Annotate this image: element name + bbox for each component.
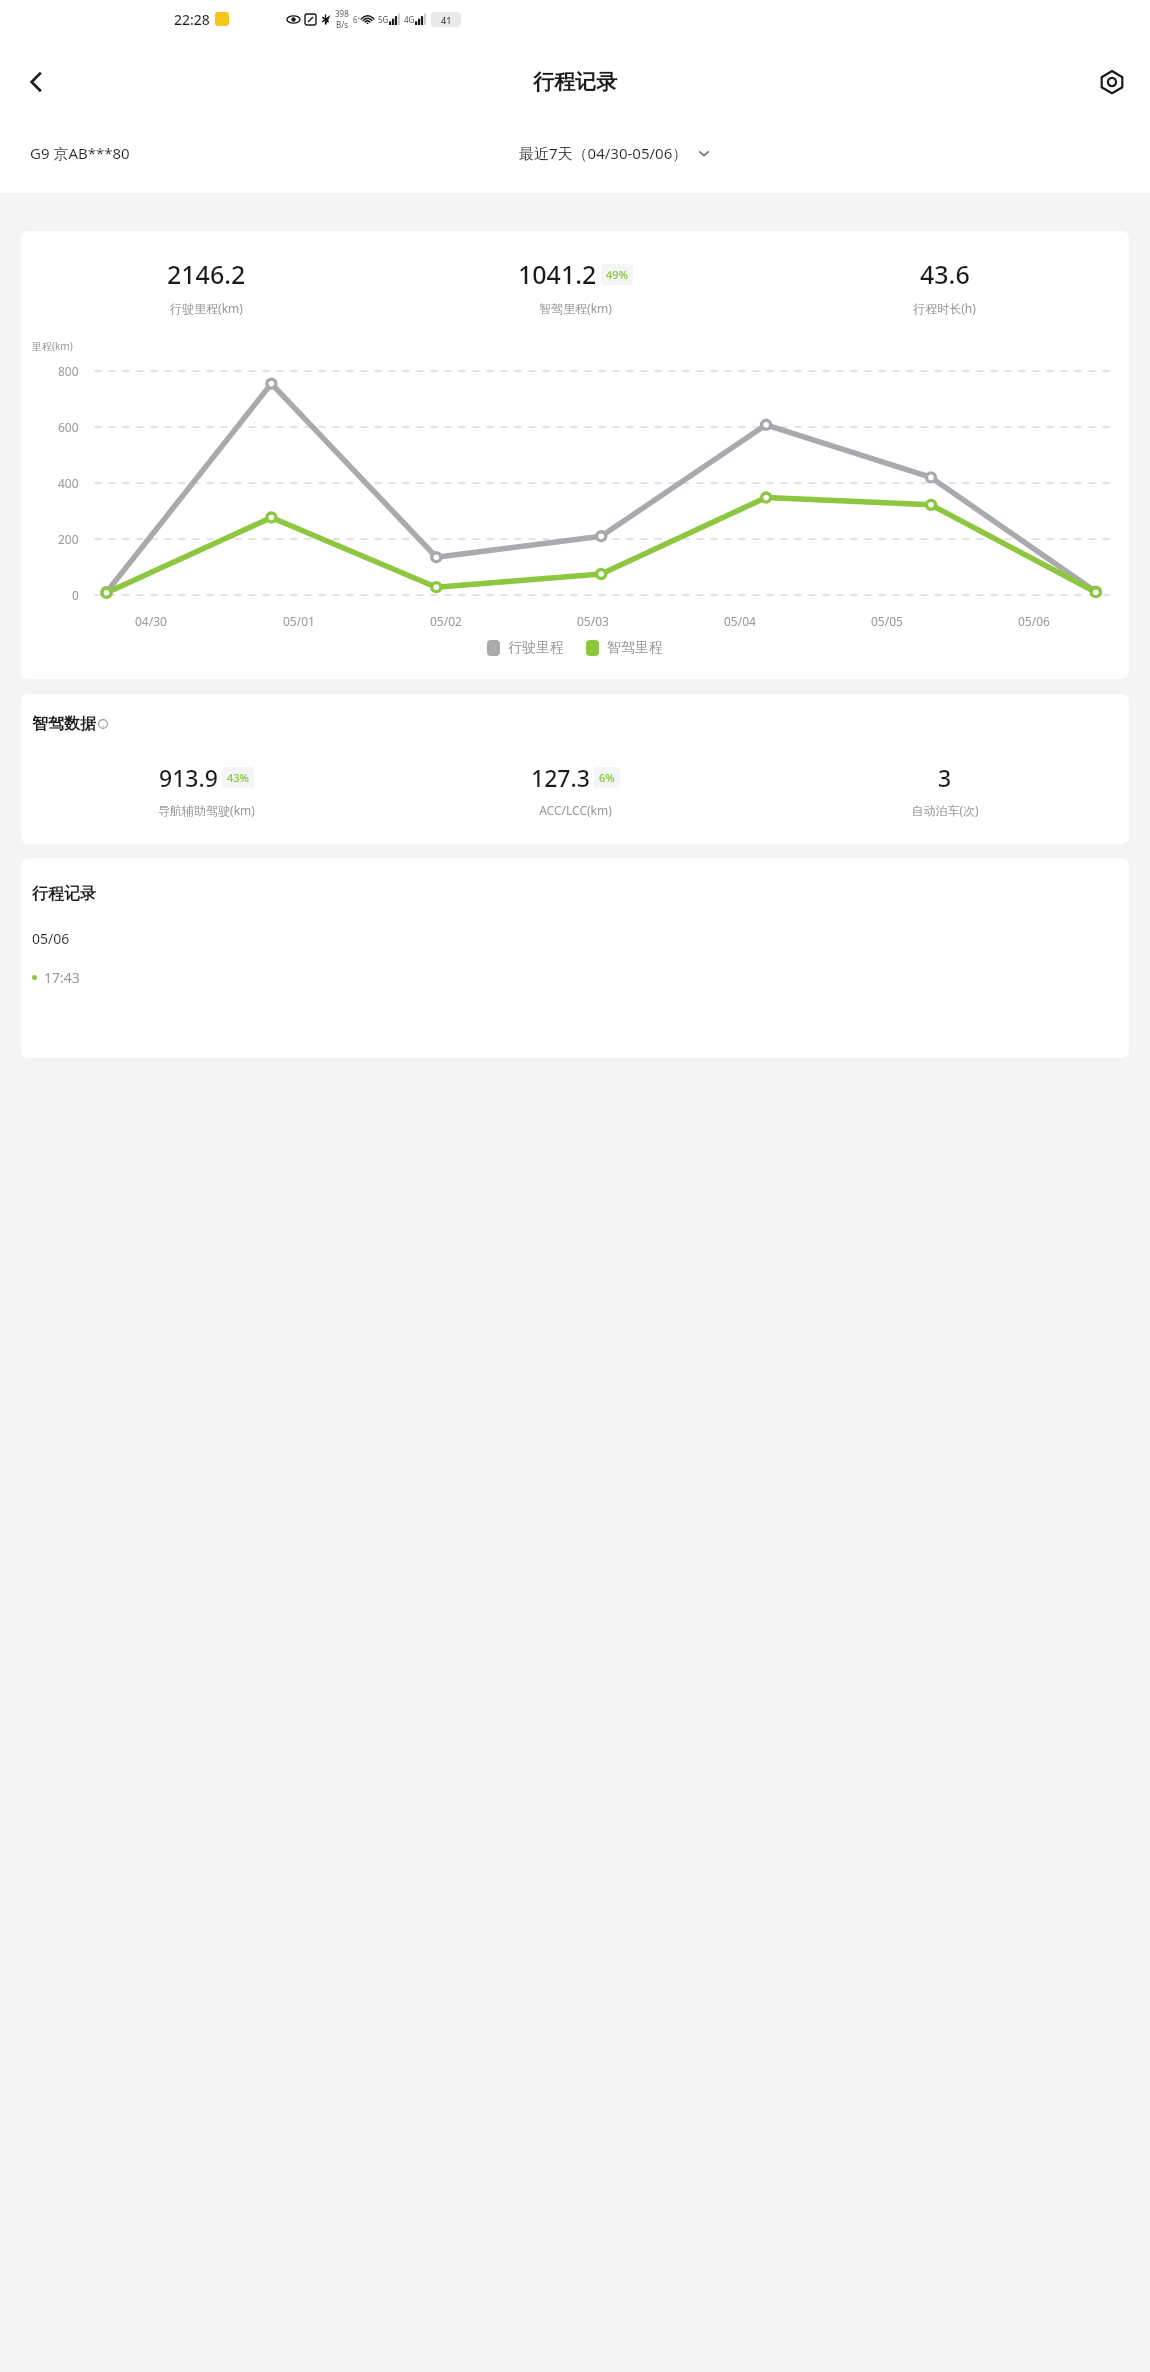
staticText: 05/02 xyxy=(430,613,462,629)
staticText: 04/30 xyxy=(135,613,167,629)
staticText: 200 xyxy=(58,531,79,547)
staticText: 行驶里程 xyxy=(508,639,564,657)
staticText: 行程时长(h) xyxy=(913,300,976,316)
staticText: 行程记录 xyxy=(32,884,96,904)
staticText: 4G xyxy=(404,14,415,25)
button[interactable]: 43.6 xyxy=(760,257,1129,316)
staticText: 5G xyxy=(378,14,389,25)
staticText: 22:28 xyxy=(174,10,210,29)
staticText: 6⁺ xyxy=(353,14,361,25)
staticText: 自动泊车(次) xyxy=(911,802,979,818)
other: Help xyxy=(98,719,108,729)
button[interactable]: Settings xyxy=(1088,58,1136,106)
button[interactable]: 127.3 xyxy=(391,762,760,818)
button[interactable]: 行驶里程 xyxy=(487,639,564,657)
staticText: 0 xyxy=(72,587,79,603)
staticText: 17:43 xyxy=(44,968,80,987)
button[interactable]: 3 xyxy=(760,762,1129,818)
staticText: ACC/LCC(km) xyxy=(539,802,612,818)
button[interactable]: 1041.2 xyxy=(391,257,760,316)
staticText: 05/05 xyxy=(871,613,903,629)
button[interactable]: 2146.2 xyxy=(21,257,391,316)
staticText: 最近7天（04/30-05/06） xyxy=(519,143,688,163)
staticText: 2146.2 xyxy=(167,257,246,291)
staticText: B/s xyxy=(336,19,349,30)
staticText: 行驶里程(km) xyxy=(170,300,243,316)
staticText: 05/06 xyxy=(32,929,70,948)
staticText: 398 xyxy=(335,8,349,19)
staticText: 智驾数据 xyxy=(32,714,96,734)
button[interactable]: 智驾数据 xyxy=(32,714,108,734)
staticText: 6% xyxy=(599,770,615,785)
staticText: 49% xyxy=(606,267,628,282)
staticText: 智驾里程(km) xyxy=(539,300,612,316)
staticText: 800 xyxy=(58,363,79,379)
staticText: 05/01 xyxy=(283,613,315,629)
staticText: 05/03 xyxy=(577,613,609,629)
staticText: 43% xyxy=(227,770,249,785)
staticText: 导航辅助驾驶(km) xyxy=(158,802,255,818)
staticText: 智驾里程 xyxy=(607,639,663,657)
button[interactable]: G9 京AB***80 xyxy=(30,143,130,163)
staticText: 05/04 xyxy=(724,613,756,629)
staticText: 43.6 xyxy=(920,257,970,291)
button[interactable]: 智驾里程 xyxy=(586,639,663,657)
staticText: 05/06 xyxy=(1018,613,1050,629)
staticText: 41 xyxy=(441,14,452,26)
staticText: 600 xyxy=(58,419,79,435)
button[interactable]: 913.9 xyxy=(21,762,391,818)
button[interactable]: 最近7天（04/30-05/06） xyxy=(519,143,711,163)
staticText: 913.9 xyxy=(159,762,218,793)
staticText: 3 xyxy=(938,762,952,793)
staticText: 行程记录 xyxy=(533,69,617,95)
staticText: 1041.2 xyxy=(518,257,597,291)
staticText: 127.3 xyxy=(531,762,590,793)
staticText: 里程(km) xyxy=(32,339,73,353)
staticText: 400 xyxy=(58,475,79,491)
button[interactable]: Back xyxy=(12,58,60,106)
